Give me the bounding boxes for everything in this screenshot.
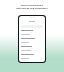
staticText: Notes [29, 20, 35, 23]
staticText: with Notes and Reminders [16, 6, 48, 9]
staticText: Boost productivity [21, 3, 43, 6]
